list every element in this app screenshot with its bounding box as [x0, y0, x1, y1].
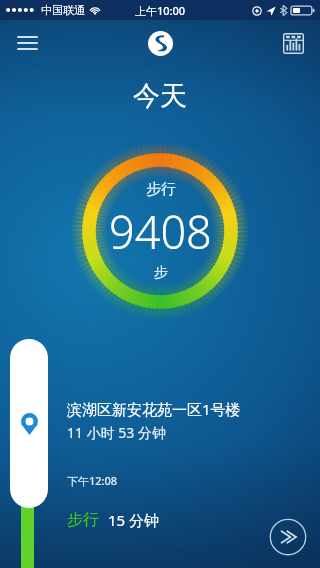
staticText: 9408: [109, 201, 212, 262]
button[interactable]: S Health: [143, 26, 177, 60]
button[interactable]: Statistics: [276, 26, 310, 60]
staticText: 11 小时 53 分钟: [67, 423, 166, 442]
staticText: 下午12:08: [67, 473, 118, 488]
button[interactable]: Place timeline: [10, 339, 48, 508]
staticText: 15 分钟: [108, 510, 160, 530]
staticText: 步行: [146, 180, 176, 199]
staticText: 滨湖区新安花苑一区1号楼: [67, 399, 241, 419]
staticText: 步行: [67, 510, 99, 530]
button[interactable]: 步行: [60, 131, 260, 331]
staticText: 中国联通: [41, 3, 85, 17]
staticText: 上午10:00: [135, 3, 186, 18]
staticText: 步: [154, 264, 168, 282]
button[interactable]: Menu: [10, 26, 44, 60]
button[interactable]: Next: [269, 518, 307, 556]
staticText: 今天: [133, 79, 187, 113]
